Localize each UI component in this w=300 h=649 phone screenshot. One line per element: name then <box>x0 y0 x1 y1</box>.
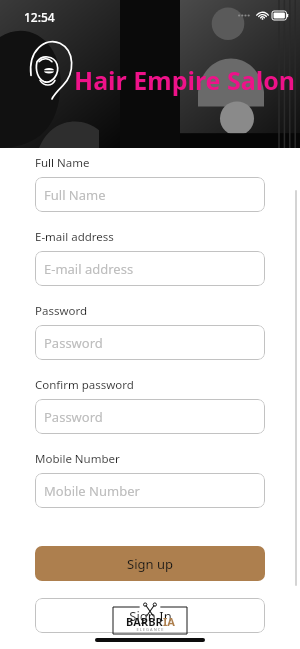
staticText: E-mail address <box>44 260 134 278</box>
button[interactable]: Sign In <box>35 598 265 633</box>
button[interactable]: Sign up <box>35 546 265 581</box>
staticText: Sign In <box>129 607 172 625</box>
other: Hair Empire Salon logo <box>27 37 77 99</box>
staticText: Mobile Number <box>44 482 140 500</box>
staticText: 12:54 <box>24 9 55 25</box>
button[interactable]: Mobile Number <box>35 473 265 508</box>
staticText: Full Name <box>44 186 106 204</box>
staticText: Full Name <box>35 155 90 171</box>
staticText: Mobile Number <box>35 451 120 467</box>
staticText: Password <box>44 408 103 426</box>
staticText: Sign up <box>127 555 173 573</box>
staticText: Confirm password <box>35 377 134 393</box>
staticText: Hair Empire Salon <box>74 63 296 97</box>
staticText: Password <box>35 303 88 319</box>
staticText: BARBR <box>126 614 163 629</box>
staticText: Password <box>44 334 103 352</box>
button[interactable]: Password <box>35 399 265 434</box>
button[interactable]: E-mail address <box>35 251 265 286</box>
staticText: E-mail address <box>35 229 114 245</box>
staticText: IA <box>163 614 175 629</box>
button[interactable]: Full Name <box>35 177 265 212</box>
button[interactable]: Password <box>35 325 265 360</box>
staticText: E L E G A N C E <box>136 627 164 632</box>
